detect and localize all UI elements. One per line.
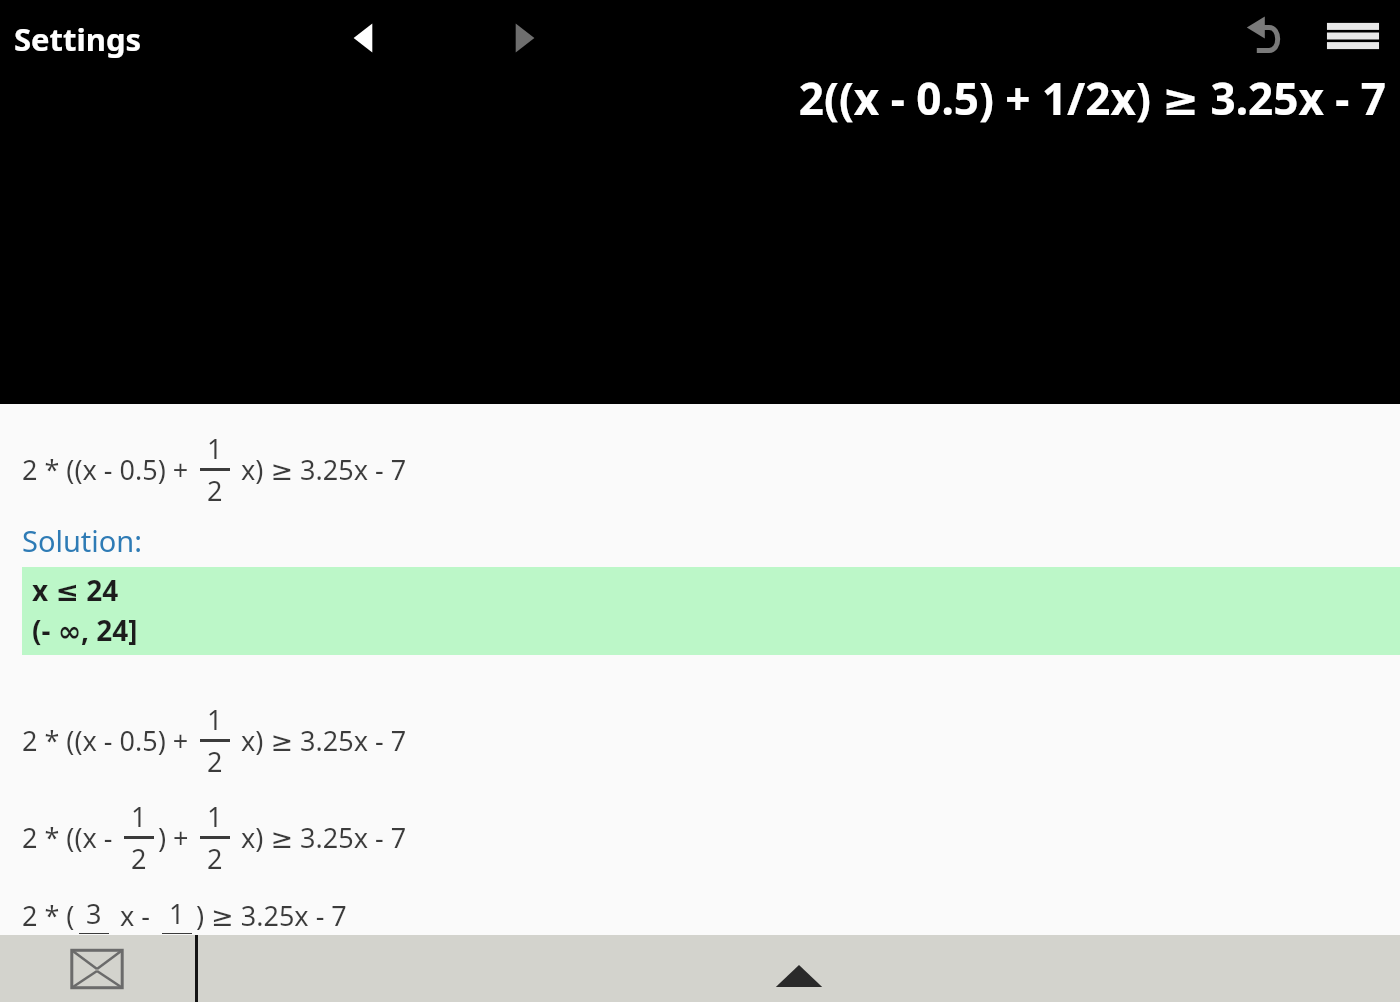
staticText: x) ≥ 3.25x - 7 bbox=[234, 451, 407, 488]
staticText: 2 bbox=[207, 840, 223, 877]
staticText: 2 * ( bbox=[22, 897, 75, 934]
button[interactable]: Solution: bbox=[22, 521, 143, 560]
button[interactable]: Settings bbox=[10, 16, 146, 62]
button[interactable]: Scroll up bbox=[770, 959, 828, 993]
staticText: 1 bbox=[207, 701, 223, 738]
button[interactable]: x ≤ 24 bbox=[22, 567, 1400, 655]
staticText: 2 * ((x - 0.5) + bbox=[22, 722, 196, 759]
staticText: 1 bbox=[207, 798, 223, 835]
button[interactable]: Previous bbox=[338, 14, 390, 62]
staticText: x) ≥ 3.25x - 7 bbox=[234, 722, 407, 759]
button[interactable]: 2 * ((x - bbox=[22, 798, 407, 877]
button[interactable]: 2 * ( bbox=[22, 895, 347, 935]
staticText: 1 bbox=[131, 798, 147, 835]
staticText: 2 bbox=[131, 840, 147, 877]
button[interactable]: Mail bbox=[62, 943, 132, 995]
button[interactable]: 2((x - 0.5) + 1/2x) ≥ 3.25x - 7 bbox=[798, 68, 1386, 128]
button[interactable]: Next bbox=[498, 14, 550, 62]
staticText: Settings bbox=[14, 18, 142, 60]
staticText: ) ≥ 3.25x - 7 bbox=[196, 897, 347, 934]
staticText: 2 bbox=[207, 472, 223, 509]
staticText: 2 bbox=[207, 743, 223, 780]
staticText: ) + bbox=[158, 819, 196, 856]
staticText: x - bbox=[113, 897, 158, 934]
staticText: x) ≥ 3.25x - 7 bbox=[234, 819, 407, 856]
staticText: Solution: bbox=[22, 521, 143, 560]
button[interactable]: Undo bbox=[1238, 12, 1294, 64]
staticText: 1 bbox=[169, 895, 185, 932]
staticText: x ≤ 24 bbox=[32, 571, 119, 609]
staticText: 2 * ((x - 0.5) + bbox=[22, 451, 196, 488]
staticText: 2 * ((x - bbox=[22, 819, 120, 856]
staticText: 1 bbox=[207, 430, 223, 467]
staticText: 2((x - 0.5) + 1/2x) ≥ 3.25x - 7 bbox=[798, 68, 1386, 128]
button[interactable]: Menu bbox=[1322, 12, 1384, 60]
staticText: 3 bbox=[86, 895, 102, 932]
staticText: (- ∞, 24] bbox=[32, 611, 138, 649]
button[interactable]: 2 * ((x - 0.5) + bbox=[22, 701, 407, 780]
